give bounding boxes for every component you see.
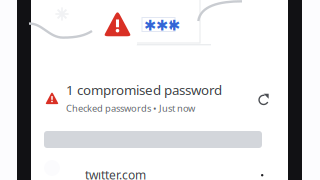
staticText: Checked passwords • Just now xyxy=(66,102,195,114)
button[interactable]: 1 compromised password xyxy=(31,78,288,116)
button[interactable]: twitter.com xyxy=(31,155,288,180)
staticText: twitter.com xyxy=(85,167,146,180)
staticText: 1 compromised password xyxy=(66,81,222,99)
staticText: ✱✱✱ xyxy=(144,17,180,34)
